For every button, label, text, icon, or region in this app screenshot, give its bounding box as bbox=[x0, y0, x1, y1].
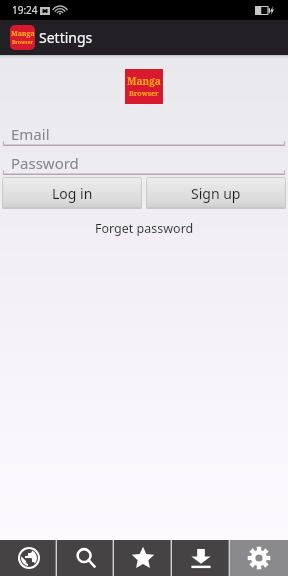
staticText: Email bbox=[11, 124, 50, 140]
staticText: Log in bbox=[52, 184, 93, 203]
button[interactable]: Browse bbox=[0, 540, 57, 576]
button[interactable]: Password bbox=[0, 153, 288, 177]
staticText: Browser bbox=[12, 39, 34, 46]
button[interactable]: Log in bbox=[2, 177, 142, 209]
button[interactable]: Search bbox=[57, 540, 114, 576]
staticText: Forget password bbox=[95, 220, 194, 237]
button[interactable]: Sign up bbox=[146, 177, 286, 209]
button[interactable]: Settings bbox=[230, 540, 288, 576]
staticText: Sign up bbox=[191, 184, 241, 203]
button[interactable]: Forget password bbox=[87, 219, 202, 238]
staticText: Manga bbox=[11, 29, 35, 39]
staticText: Settings bbox=[39, 28, 93, 47]
staticText: Manga bbox=[127, 74, 161, 88]
button[interactable]: Manga Browser app icon bbox=[10, 25, 35, 50]
staticText: Password bbox=[11, 153, 79, 169]
button[interactable]: Email bbox=[0, 124, 288, 148]
staticText: 19:24 bbox=[12, 3, 38, 17]
staticText: Browser bbox=[129, 89, 159, 99]
button[interactable]: Downloads bbox=[172, 540, 230, 576]
button[interactable]: Favorites bbox=[114, 540, 172, 576]
